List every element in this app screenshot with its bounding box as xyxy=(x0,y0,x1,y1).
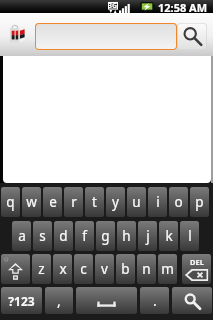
button[interactable]: d xyxy=(54,221,73,251)
staticText: n xyxy=(142,260,151,278)
button[interactable]: ?123 xyxy=(1,287,42,314)
staticText: , xyxy=(57,291,61,310)
staticText: d xyxy=(59,227,68,245)
other: 3G xyxy=(108,1,118,13)
button[interactable]: v xyxy=(95,254,114,284)
staticText: i xyxy=(156,193,160,211)
button[interactable]: f xyxy=(75,221,94,251)
staticText: z xyxy=(38,260,45,278)
button[interactable]: n xyxy=(137,254,156,284)
staticText: t xyxy=(92,193,97,211)
staticText: p xyxy=(195,193,204,211)
button[interactable]: Go xyxy=(172,287,212,314)
button[interactable]: w xyxy=(22,187,41,217)
button[interactable]: t xyxy=(85,187,104,217)
button[interactable]: h xyxy=(117,221,136,251)
staticText: u xyxy=(132,193,141,211)
staticText: y xyxy=(112,193,119,211)
staticText: w xyxy=(26,193,37,211)
staticText: c xyxy=(80,260,87,278)
button[interactable]: i xyxy=(148,187,167,217)
button[interactable]: b xyxy=(116,254,135,284)
button[interactable]: q xyxy=(1,187,20,217)
button[interactable]: Shift xyxy=(1,254,30,284)
button[interactable]: Search xyxy=(177,23,207,50)
staticText: 12:58 AM xyxy=(158,0,208,13)
staticText: a xyxy=(18,227,26,245)
staticText: h xyxy=(122,227,131,245)
button[interactable]: r xyxy=(64,187,83,217)
staticText: b xyxy=(121,260,130,278)
button[interactable]: m xyxy=(158,254,177,284)
staticText: r xyxy=(71,193,77,211)
button[interactable]: . xyxy=(140,287,169,314)
staticText: . xyxy=(153,291,157,310)
button[interactable]: l xyxy=(180,221,199,251)
button[interactable]: j xyxy=(138,221,157,251)
button[interactable]: , xyxy=(45,287,73,314)
staticText: g xyxy=(101,227,110,245)
staticText: x xyxy=(59,260,67,278)
staticText: f xyxy=(82,227,87,245)
staticText: m xyxy=(161,260,174,278)
button[interactable]: o xyxy=(169,187,188,217)
button[interactable]: y xyxy=(106,187,125,217)
staticText: q xyxy=(6,193,15,211)
staticText: k xyxy=(165,227,173,245)
other: Signal xyxy=(119,3,130,13)
other: Battery xyxy=(140,2,155,11)
button[interactable]: Delete xyxy=(182,254,211,284)
staticText: j xyxy=(146,227,150,245)
staticText: v xyxy=(101,260,108,278)
button[interactable]: g xyxy=(96,221,115,251)
staticText: o xyxy=(174,193,183,211)
button[interactable]: Search field xyxy=(35,23,177,50)
button[interactable]: s xyxy=(33,221,52,251)
staticText: s xyxy=(39,227,46,245)
button[interactable]: c xyxy=(74,254,93,284)
button[interactable]: p xyxy=(190,187,209,217)
button[interactable]: e xyxy=(43,187,62,217)
button[interactable]: x xyxy=(53,254,72,284)
staticText: l xyxy=(188,227,192,245)
staticText: DEL xyxy=(190,257,204,267)
button[interactable]: k xyxy=(159,221,178,251)
staticText: 3G xyxy=(108,1,118,11)
button[interactable]: u xyxy=(127,187,146,217)
button[interactable]: Market xyxy=(9,25,26,44)
button[interactable]: z xyxy=(32,254,51,284)
staticText: ?123 xyxy=(8,293,35,309)
button[interactable]: Space xyxy=(76,287,137,314)
staticText: e xyxy=(49,193,57,211)
button[interactable]: a xyxy=(12,221,31,251)
